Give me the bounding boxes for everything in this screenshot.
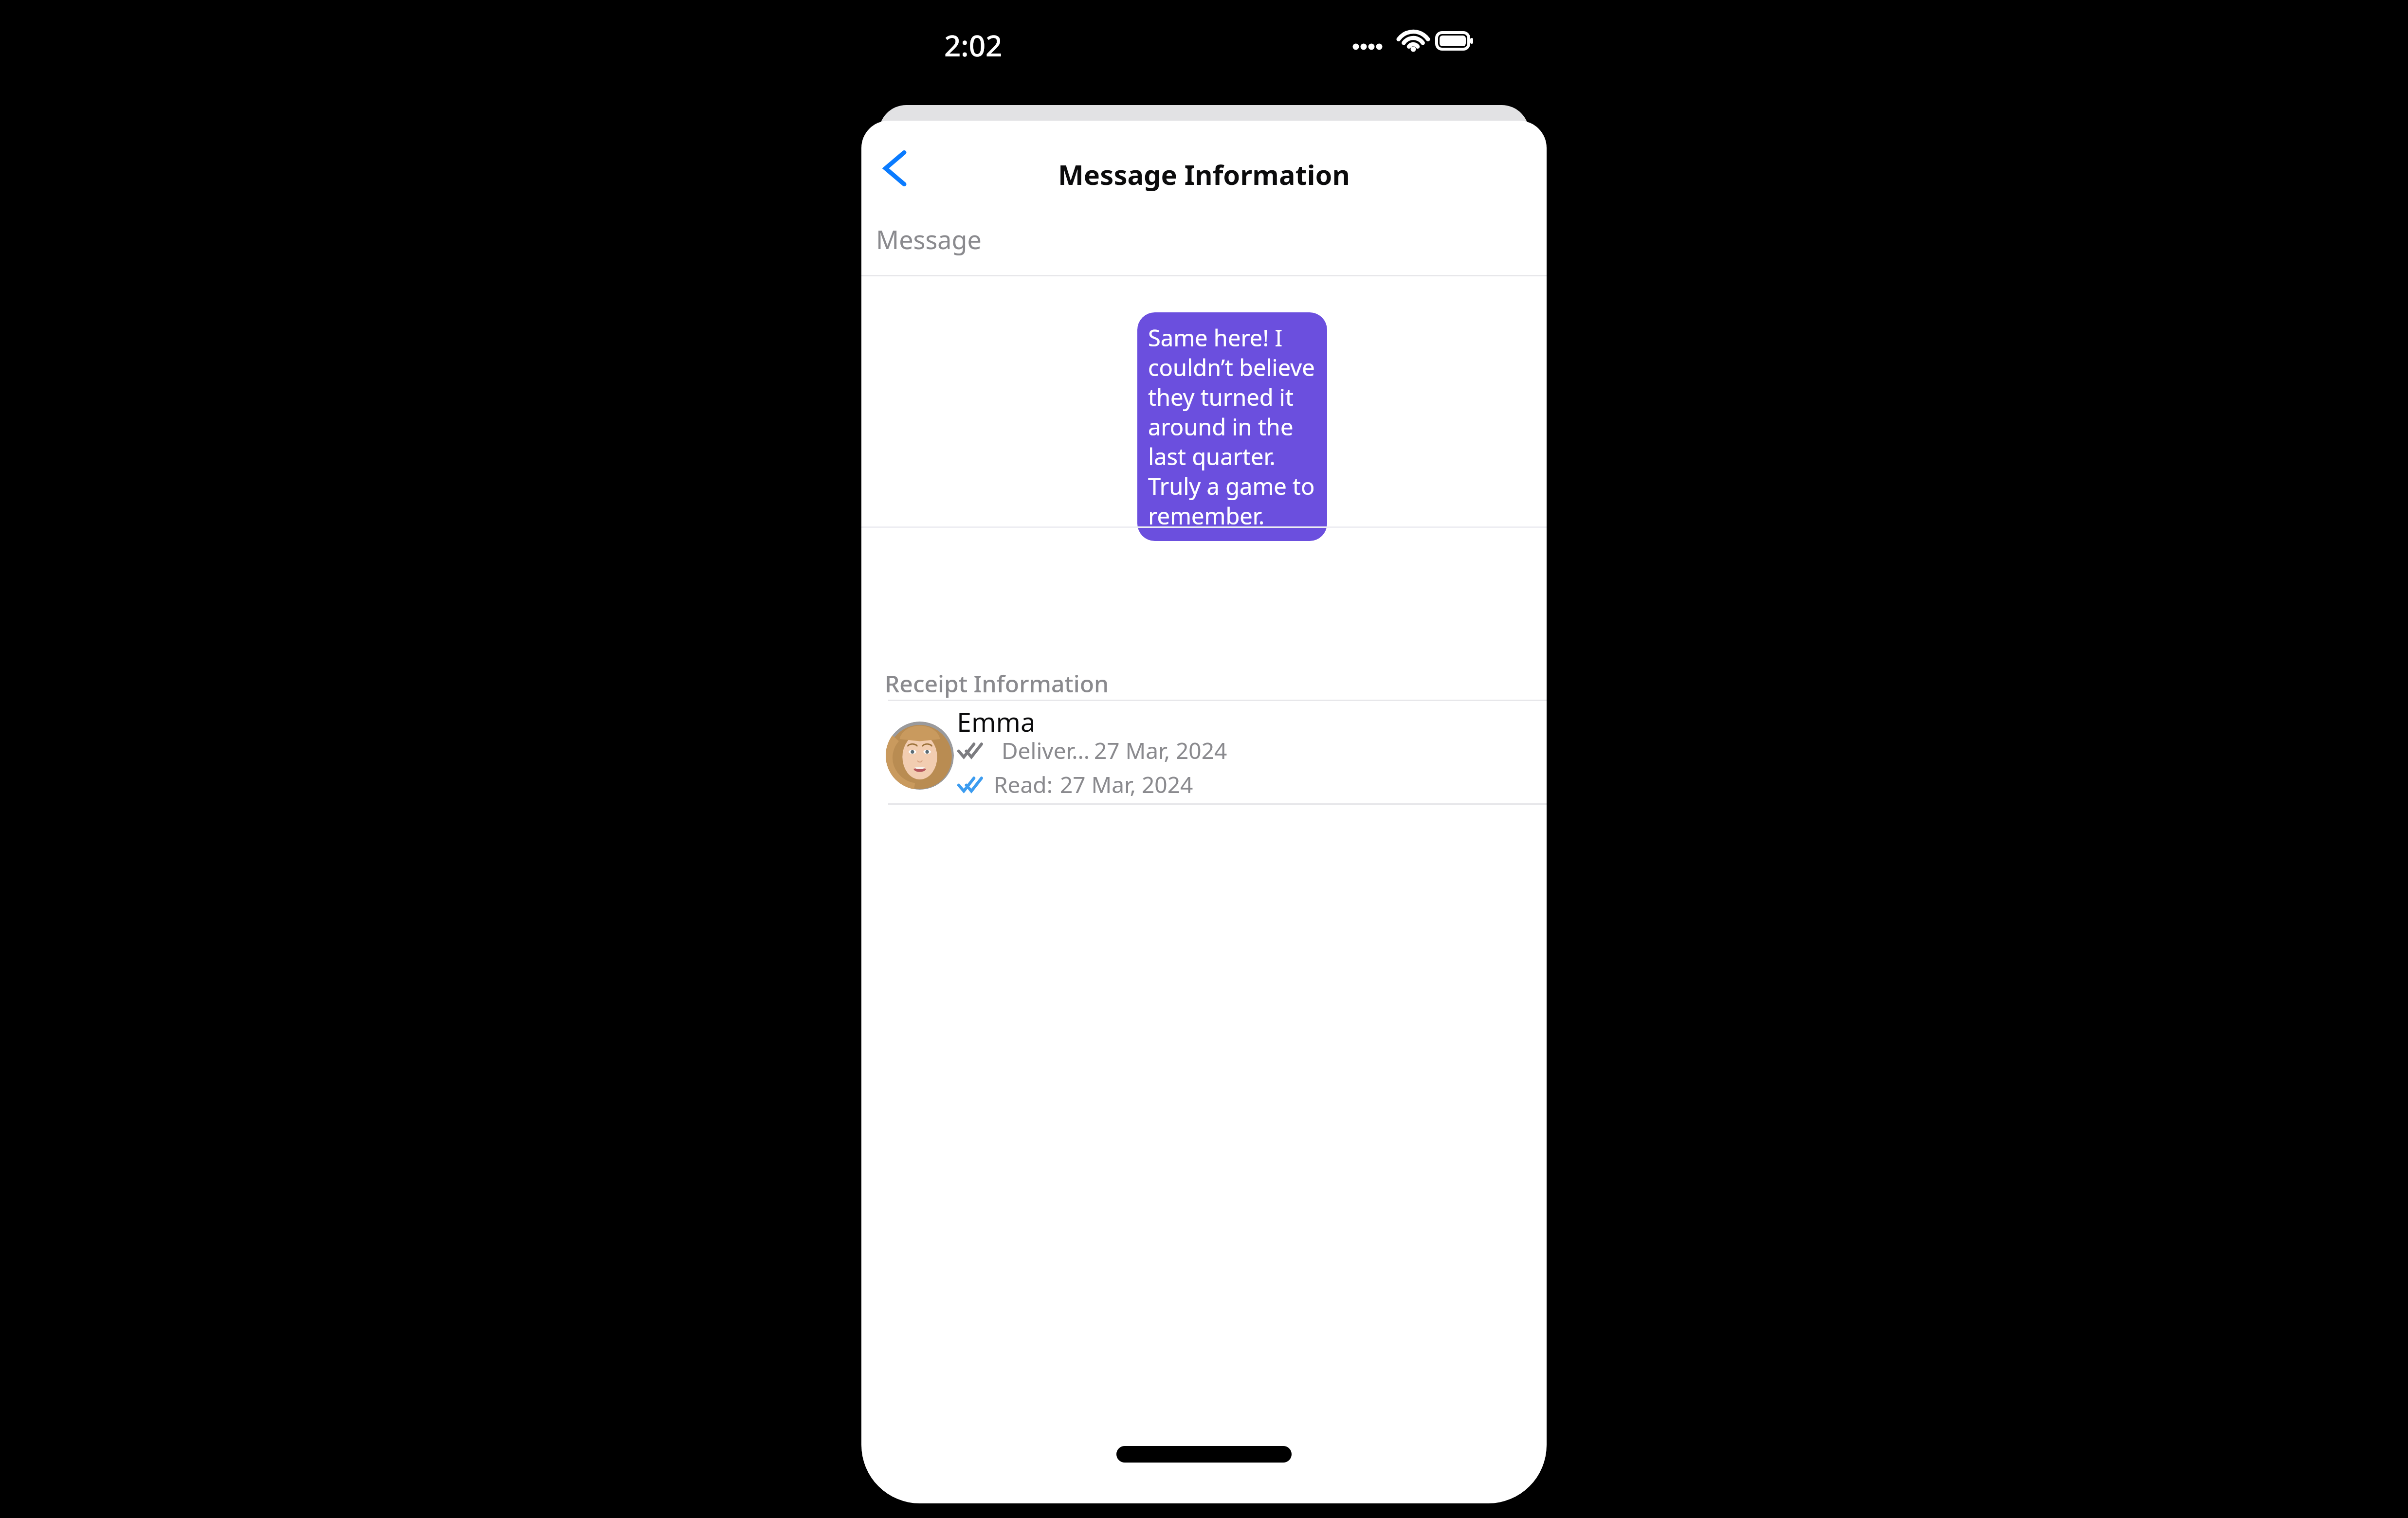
button[interactable]: Back xyxy=(866,139,925,198)
staticText: 2:02 xyxy=(944,25,1003,65)
button[interactable]: Same here! I couldn’t believe they turne… xyxy=(1137,312,1327,541)
button[interactable]: Emma xyxy=(861,700,1547,803)
staticText: 27 Mar, 2024 xyxy=(1094,735,1227,766)
staticText: Message xyxy=(876,222,982,256)
staticText: Message Information xyxy=(861,156,1547,193)
staticText: 27 Mar, 2024 xyxy=(1060,769,1193,800)
staticText: Deliver... xyxy=(1002,735,1090,766)
staticText: Emma xyxy=(957,704,1036,740)
staticText: Receipt Information xyxy=(885,668,1109,699)
staticText: Read: xyxy=(994,769,1053,800)
staticText: Same here! I couldn’t believe they turne… xyxy=(1148,322,1316,531)
